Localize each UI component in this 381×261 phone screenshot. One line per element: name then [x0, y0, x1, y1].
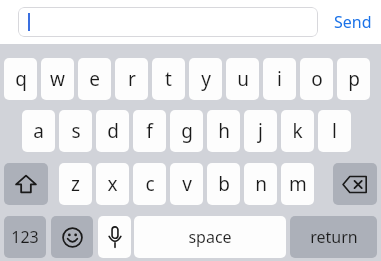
button[interactable]: n: [244, 163, 277, 205]
button[interactable]: h: [207, 110, 240, 152]
staticText: space: [188, 226, 232, 248]
staticText: r: [128, 66, 136, 92]
button[interactable]: c: [133, 163, 166, 205]
staticText: 123: [11, 226, 39, 248]
button[interactable]: o: [300, 58, 333, 100]
button[interactable]: v: [170, 163, 203, 205]
button[interactable]: return: [290, 216, 377, 258]
button[interactable]: Emoji: [51, 216, 93, 258]
button[interactable]: Dictation: [98, 216, 131, 258]
button[interactable]: t: [152, 58, 185, 100]
staticText: t: [165, 66, 172, 92]
button[interactable]: 123: [4, 216, 46, 258]
staticText: c: [145, 171, 155, 197]
button[interactable]: e: [78, 58, 111, 100]
staticText: z: [71, 171, 80, 197]
staticText: q: [15, 66, 27, 92]
button[interactable]: x: [96, 163, 129, 205]
staticText: y: [201, 66, 211, 92]
button[interactable]: g: [170, 110, 203, 152]
button[interactable]: r: [115, 58, 148, 100]
staticText: h: [218, 118, 230, 144]
staticText: Send: [334, 11, 372, 33]
button[interactable]: a: [22, 110, 55, 152]
button[interactable]: [18, 7, 318, 37]
staticText: k: [292, 118, 303, 144]
button[interactable]: y: [189, 58, 222, 100]
staticText: g: [181, 118, 193, 144]
button[interactable]: i: [263, 58, 296, 100]
button[interactable]: m: [281, 163, 314, 205]
staticText: j: [258, 118, 263, 144]
staticText: m: [289, 171, 307, 197]
button[interactable]: j: [244, 110, 277, 152]
staticText: d: [107, 118, 119, 144]
staticText: a: [33, 118, 44, 144]
button[interactable]: w: [41, 58, 74, 100]
staticText: e: [89, 66, 100, 92]
button[interactable]: d: [96, 110, 129, 152]
staticText: n: [255, 171, 267, 197]
button[interactable]: p: [337, 58, 370, 100]
button[interactable]: u: [226, 58, 259, 100]
button[interactable]: s: [59, 110, 92, 152]
button[interactable]: z: [59, 163, 92, 205]
staticText: x: [107, 171, 118, 197]
staticText: f: [146, 118, 153, 144]
button[interactable]: b: [207, 163, 240, 205]
staticText: p: [348, 66, 360, 92]
button[interactable]: Backspace: [333, 163, 377, 205]
staticText: s: [71, 118, 81, 144]
button[interactable]: k: [281, 110, 314, 152]
staticText: b: [218, 171, 230, 197]
staticText: w: [50, 66, 65, 92]
staticText: u: [237, 66, 249, 92]
button[interactable]: Shift: [4, 163, 48, 205]
button[interactable]: space: [134, 216, 286, 258]
button[interactable]: l: [318, 110, 351, 152]
staticText: l: [332, 118, 337, 144]
button[interactable]: f: [133, 110, 166, 152]
staticText: return: [310, 226, 358, 248]
staticText: v: [182, 171, 192, 197]
button[interactable]: q: [4, 58, 37, 100]
staticText: o: [311, 66, 323, 92]
button[interactable]: Send: [328, 7, 378, 37]
staticText: i: [277, 66, 282, 92]
